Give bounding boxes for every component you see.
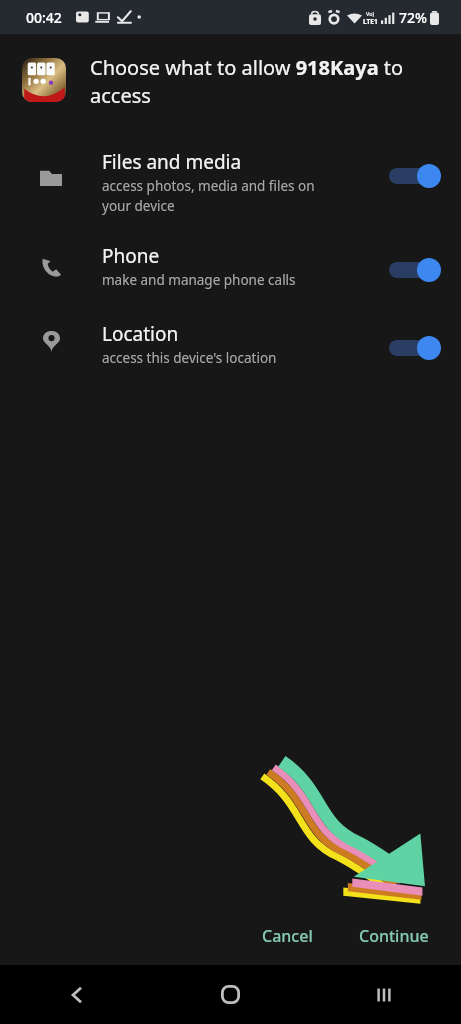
button[interactable] (389, 255, 441, 285)
staticText: Files and media (102, 149, 242, 175)
staticText: access photos, media and files on your d… (102, 177, 315, 215)
staticText: make and manage phone calls (102, 271, 296, 289)
button[interactable]: Phone (0, 243, 461, 289)
button[interactable]: Home (153, 965, 307, 1024)
staticText: LTE1 (363, 17, 378, 26)
staticText: Cancel (262, 925, 313, 947)
staticText: 00:42 (26, 8, 62, 27)
staticText: Continue (359, 925, 429, 947)
button[interactable]: Location (0, 321, 461, 367)
staticText: Phone (102, 243, 160, 269)
staticText: Location (102, 321, 179, 347)
button[interactable] (389, 161, 441, 191)
button[interactable] (389, 333, 441, 363)
staticText: Choose what to allow 918Kaya to access (90, 54, 437, 109)
staticText: access this device's location (102, 349, 277, 367)
button[interactable]: Continue (341, 915, 447, 957)
staticText: Vo) (366, 10, 375, 17)
button[interactable]: Back (0, 965, 153, 1024)
button[interactable]: Files and media (0, 149, 461, 215)
staticText: 72% (399, 8, 427, 27)
button[interactable]: Cancel (244, 915, 331, 957)
button[interactable]: Recent apps (307, 965, 461, 1024)
